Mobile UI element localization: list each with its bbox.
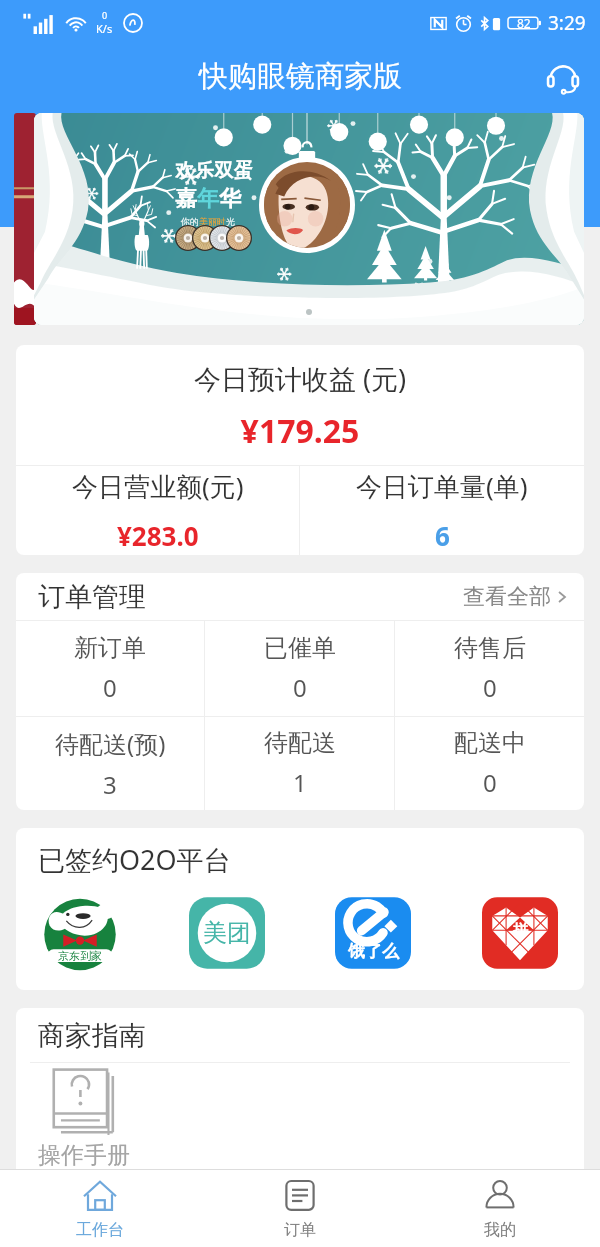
staticText: 拼 [513, 921, 528, 940]
staticText: 待配送 [264, 728, 336, 758]
button[interactable]: 我的 [400, 1170, 600, 1247]
button[interactable]: 待配送(预) [16, 717, 204, 810]
staticText: 饿了么 [348, 941, 399, 962]
staticText: 0 [293, 671, 307, 704]
staticText: 工作台 [76, 1220, 124, 1240]
staticText: 配送中 [454, 728, 526, 758]
staticText: 华 [219, 185, 241, 213]
staticText: 美丽时 [199, 216, 226, 227]
button[interactable]: 查看全部 [463, 577, 568, 617]
button[interactable]: 已催单 [205, 621, 394, 716]
staticText: 待配送(预) [55, 727, 166, 760]
staticText: 美团 [203, 918, 251, 948]
staticText: 年 [197, 185, 219, 213]
staticText: 你的 [181, 216, 199, 227]
button[interactable]: 欢乐双蛋 [34, 113, 584, 325]
staticText: 0 [483, 766, 497, 799]
staticText: K/s [96, 21, 113, 36]
button[interactable]: 客服 [540, 56, 586, 102]
staticText: 我的 [484, 1220, 516, 1240]
button[interactable]: 待配送 [205, 717, 394, 810]
staticText: 欢乐双蛋 [175, 159, 253, 183]
button[interactable]: 今日订单量(单) [300, 466, 584, 555]
staticText: ¥283.0 [117, 518, 199, 553]
button[interactable]: 拼多多 [482, 895, 558, 971]
staticText: 1 [293, 766, 307, 799]
staticText: 0 [103, 671, 117, 704]
staticText: 查看全部 [463, 583, 551, 611]
staticText: 待售后 [454, 633, 526, 663]
staticText: 0 [483, 671, 497, 704]
staticText: 今日预计收益 (元) [16, 360, 584, 397]
staticText: 6 [435, 518, 450, 553]
button[interactable]: 京东到家 [42, 895, 118, 971]
button[interactable]: 美团 [189, 895, 265, 971]
button[interactable]: 配送中 [395, 717, 584, 810]
button[interactable]: 新订单 [16, 621, 204, 716]
staticText: 京东到家 [58, 949, 102, 963]
button[interactable]: 操作手册 [38, 1066, 130, 1170]
button[interactable]: 今日营业额(元) [16, 466, 299, 555]
staticText: 已催单 [264, 633, 336, 663]
staticText: 快购眼镜商家版 [199, 58, 402, 95]
staticText: ¥179.25 [16, 409, 584, 453]
staticText: 82 [517, 15, 531, 31]
staticText: 光 [226, 216, 235, 227]
staticText: 订单 [284, 1220, 316, 1240]
staticText: 订单管理 [38, 580, 146, 614]
staticText: 3:29 [548, 10, 586, 36]
button[interactable]: 订单 [200, 1170, 400, 1247]
staticText: 已签约O2O平台 [38, 841, 231, 878]
button[interactable]: 饿了么 [335, 895, 411, 971]
staticText: 今日订单量(单) [356, 468, 528, 504]
staticText: 0 [102, 9, 108, 21]
staticText: 今日营业额(元) [72, 468, 244, 504]
staticText: 操作手册 [38, 1141, 130, 1170]
staticText: 新订单 [74, 633, 146, 663]
staticText: 商家指南 [38, 1019, 146, 1053]
button[interactable]: 工作台 [0, 1170, 200, 1247]
staticText: 嘉 [175, 185, 197, 213]
button[interactable]: 待售后 [395, 621, 584, 716]
staticText: 3 [103, 768, 117, 801]
